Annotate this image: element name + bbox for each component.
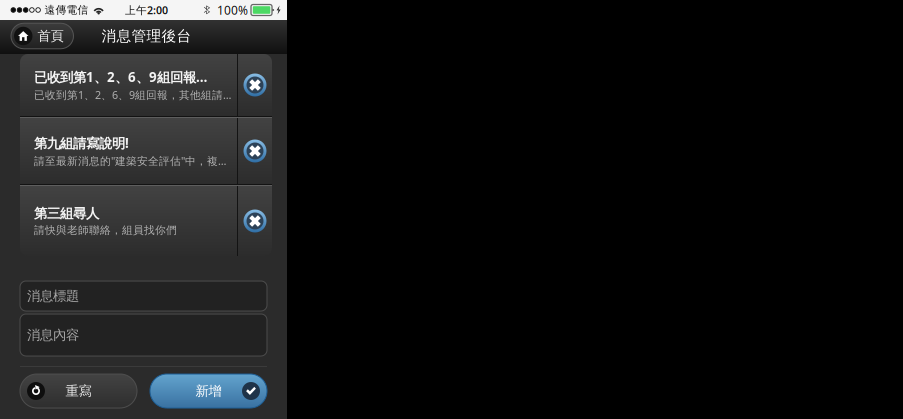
staticText: 第九組請寫說明! bbox=[34, 134, 129, 152]
staticText: 消息內容 bbox=[27, 327, 79, 343]
staticText: 新增 bbox=[195, 383, 221, 399]
staticText: 請至最新消息的"建築安全評估"中，複… bbox=[34, 154, 226, 168]
button[interactable]: 消息標題 bbox=[20, 281, 267, 311]
button[interactable]: 第九組請寫說明! bbox=[20, 118, 237, 184]
button[interactable]: 第三組尋人 bbox=[20, 186, 237, 256]
staticText: 已收到第1、2、6、9組回報… bbox=[34, 68, 207, 86]
staticText: 首頁 bbox=[37, 28, 63, 44]
button[interactable]: Delete message bbox=[238, 186, 272, 256]
button[interactable]: 重寫 bbox=[20, 374, 137, 408]
staticText: 消息管理後台 bbox=[101, 27, 191, 45]
button[interactable]: Delete message bbox=[238, 118, 272, 184]
button[interactable]: 已收到第1、2、6、9組回報… bbox=[20, 54, 237, 116]
staticText: 100% bbox=[217, 2, 248, 18]
button[interactable]: Delete message bbox=[238, 54, 272, 116]
staticText: 上午2:00 bbox=[125, 3, 168, 17]
button[interactable]: 首頁 bbox=[11, 23, 73, 49]
staticText: 遠傳電信 bbox=[44, 3, 88, 16]
staticText: 重寫 bbox=[65, 383, 91, 399]
staticText: 已收到第1、2、6、9組回報，其他組請… bbox=[34, 88, 231, 102]
staticText: 第三組尋人 bbox=[34, 205, 99, 222]
staticText: 消息標題 bbox=[27, 288, 79, 304]
button[interactable]: 消息內容 bbox=[20, 314, 267, 356]
button[interactable]: 新增 bbox=[150, 374, 267, 408]
staticText: 請快與老師聯絡，組員找你們 bbox=[34, 224, 177, 237]
